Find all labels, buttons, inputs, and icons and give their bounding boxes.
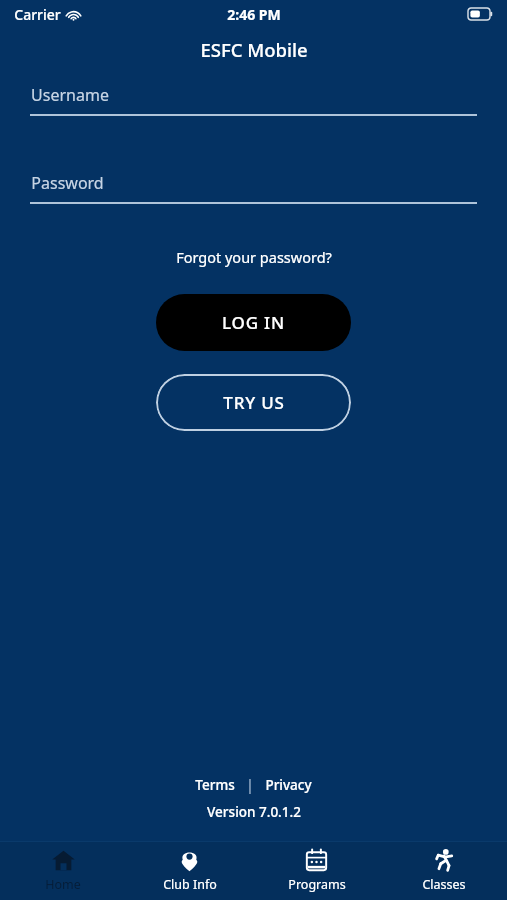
button[interactable]: Club Info	[126, 842, 253, 900]
staticText: Club Info	[163, 876, 217, 893]
staticText: Home	[45, 876, 81, 893]
staticText: Classes	[422, 876, 466, 893]
staticText: TRY US	[223, 391, 285, 414]
staticText: Forgot your password?	[176, 247, 332, 267]
staticText: Password	[31, 172, 104, 194]
staticText: Carrier	[14, 5, 61, 24]
staticText: Programs	[288, 876, 346, 893]
button[interactable]: Programs	[253, 842, 380, 900]
button[interactable]: LOG IN	[156, 294, 351, 351]
button[interactable]: Terms	[191, 774, 239, 796]
button[interactable]: Forgot your password?	[170, 244, 338, 270]
button[interactable]: TRY US	[156, 374, 351, 431]
button[interactable]: Classes	[380, 842, 507, 900]
button[interactable]: Password	[30, 172, 477, 204]
staticText: Username	[31, 84, 109, 106]
staticText: Version 7.0.1.2	[207, 803, 301, 821]
staticText: LOG IN	[222, 311, 285, 334]
staticText: ESFC Mobile	[200, 37, 308, 62]
staticText: Terms	[195, 776, 235, 794]
button[interactable]: Privacy	[261, 774, 316, 796]
button[interactable]: Home	[0, 842, 126, 900]
button[interactable]: Username	[30, 84, 477, 116]
staticText: |	[246, 776, 254, 794]
staticText: Privacy	[265, 776, 312, 794]
staticText: 2:46 PM	[227, 5, 281, 24]
